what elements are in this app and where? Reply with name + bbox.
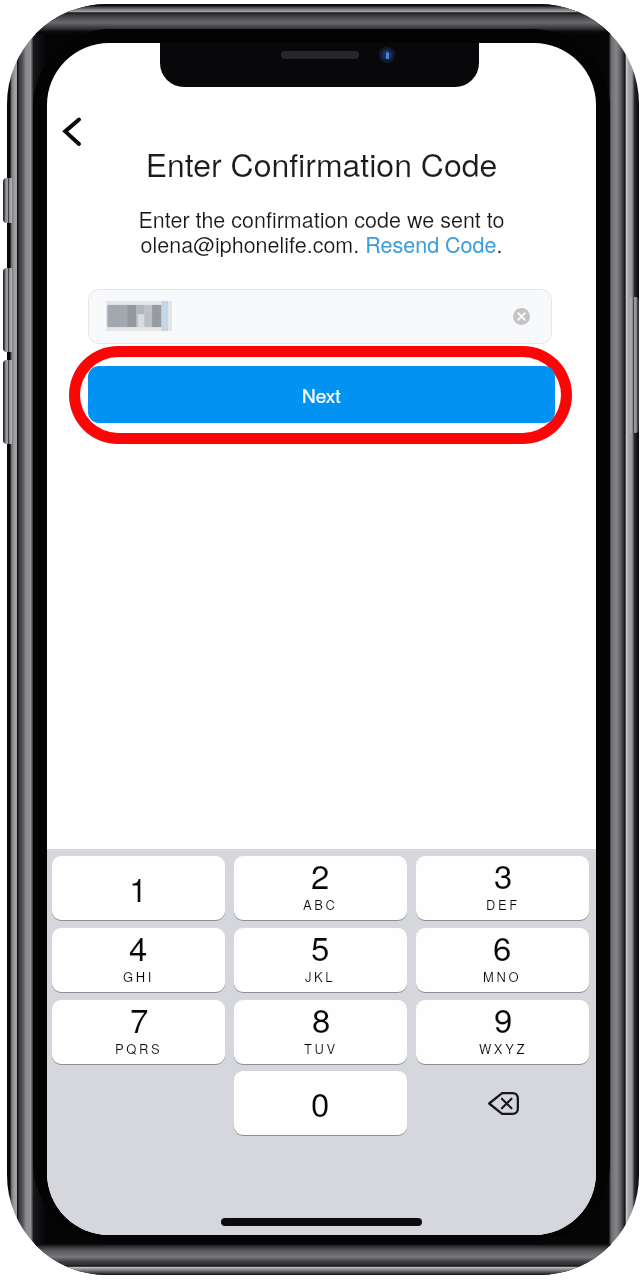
staticText: 7 (130, 1000, 149, 1042)
staticText: PQRS (115, 1039, 163, 1056)
staticText: ABC (303, 895, 338, 912)
staticText: WXYZ (479, 1039, 527, 1056)
staticText: 4 (129, 928, 148, 970)
button[interactable]: 5 (234, 928, 407, 992)
staticText: Enter the confirmation code we sent to o… (47, 203, 596, 259)
staticText: Enter Confirmation Code (47, 140, 596, 186)
staticText: 3 (494, 856, 513, 898)
button[interactable]: 4 (52, 928, 225, 992)
button[interactable]: 9 (416, 1000, 589, 1064)
staticText: GHI (123, 967, 154, 984)
staticText: JKL (305, 967, 336, 984)
button[interactable]: Clear text (513, 308, 530, 325)
button[interactable]: 1 (52, 856, 225, 920)
staticText: 1 (129, 864, 148, 911)
staticText: 8 (312, 1000, 331, 1042)
staticText: 6 (493, 928, 512, 970)
button[interactable]: 3 (416, 856, 589, 920)
staticText: MNO (483, 967, 522, 984)
button[interactable]: 6 (416, 928, 589, 992)
button[interactable]: 2 (234, 856, 407, 920)
button[interactable]: 0 (234, 1071, 407, 1135)
staticText: 5 (311, 928, 330, 970)
button[interactable]: Next (88, 366, 555, 423)
staticText: Next (302, 381, 341, 408)
button[interactable]: 7 (52, 1000, 225, 1064)
staticText: 9 (494, 1000, 513, 1042)
button[interactable]: Delete (416, 1071, 589, 1135)
staticText: 2 (311, 856, 330, 898)
button[interactable]: Clear text (88, 289, 552, 344)
staticText: 0 (311, 1079, 330, 1126)
staticText: DEF (486, 895, 520, 912)
button[interactable]: 8 (234, 1000, 407, 1064)
button[interactable]: Back (47, 97, 111, 163)
staticText: TUV (304, 1039, 338, 1056)
